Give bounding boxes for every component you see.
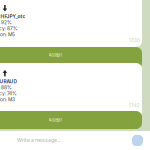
staticText: Payout: 88% xyxy=(0,84,12,90)
staticText: CHFJPY_otc xyxy=(0,13,26,19)
button[interactable]: Accept xyxy=(0,111,142,129)
staticText: Accuracy: 74% xyxy=(0,90,17,96)
staticText: EURAUD xyxy=(0,78,17,84)
staticText: Accuracy: 87% xyxy=(0,25,18,31)
button[interactable]: Accept xyxy=(0,47,142,69)
staticText: Accept xyxy=(48,117,61,123)
button[interactable]: Send voice message xyxy=(132,135,143,146)
staticText: 17:30 xyxy=(129,38,140,43)
staticText: Expiration: M3 xyxy=(0,96,15,102)
staticText: Write a message... xyxy=(17,137,60,143)
staticText: Payout: 92% xyxy=(0,19,12,25)
staticText: Expiration: M5 xyxy=(0,31,15,37)
staticText: Accept xyxy=(48,52,61,58)
staticText: 17:42 xyxy=(129,103,140,108)
